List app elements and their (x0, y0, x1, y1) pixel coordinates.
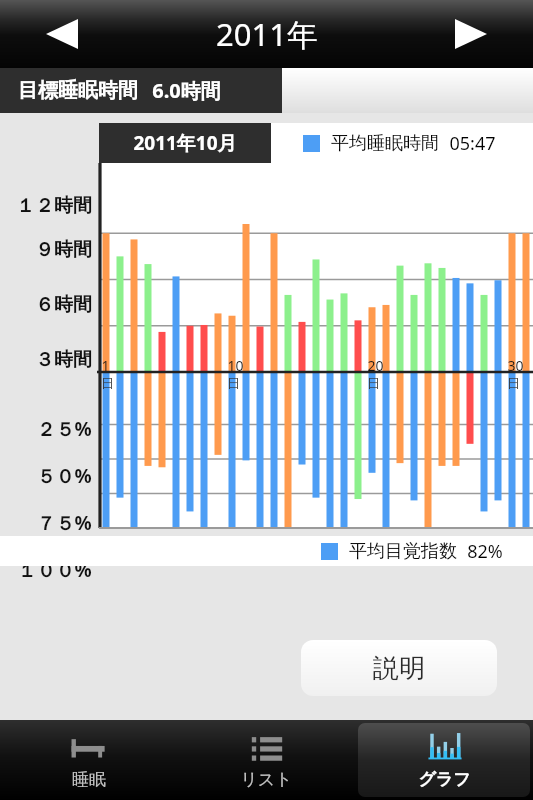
staticText: ５０% (36, 463, 92, 489)
staticText: グラフ (418, 769, 471, 790)
staticText: 日 (367, 375, 380, 391)
staticText: ９時間 (35, 238, 92, 262)
staticText: １２時間 (16, 194, 92, 218)
staticText: 説明 (373, 652, 425, 685)
staticText: 1 (101, 356, 110, 375)
staticText: 平均睡眠時間 (331, 132, 439, 155)
staticText: ２５% (36, 416, 92, 442)
button[interactable]: 睡眠 (3, 723, 174, 797)
button[interactable]: グラフ (358, 723, 530, 797)
staticText: ３時間 (35, 348, 92, 372)
staticText: 睡眠 (72, 769, 106, 790)
staticText: 20 (367, 356, 384, 375)
staticText: 2011年10月 (133, 130, 237, 156)
staticText: 30 (507, 356, 524, 375)
staticText: ７５% (36, 510, 92, 536)
staticText: ６時間 (35, 293, 92, 317)
button[interactable]: リスト (180, 723, 352, 797)
staticText: 日 (507, 375, 520, 391)
staticText: 10 (227, 356, 244, 375)
button[interactable]: 説明 (301, 640, 497, 696)
staticText: 6.0時間 (152, 77, 221, 104)
button[interactable]: 目標睡眠時間 (0, 68, 282, 113)
staticText: 82% (467, 539, 503, 564)
staticText: 05:47 (449, 131, 496, 156)
button[interactable]: Next year (447, 12, 495, 56)
staticText: リスト (240, 769, 293, 790)
button[interactable]: Previous year (38, 12, 86, 56)
button[interactable]: 2011年10月 (99, 123, 271, 163)
staticText: 2011年 (216, 13, 318, 55)
staticText: 目標睡眠時間 (18, 78, 138, 103)
staticText: 日 (227, 375, 240, 391)
staticText: １００% (17, 557, 92, 583)
staticText: 平均目覚指数 (349, 540, 457, 563)
staticText: 日 (101, 375, 114, 391)
